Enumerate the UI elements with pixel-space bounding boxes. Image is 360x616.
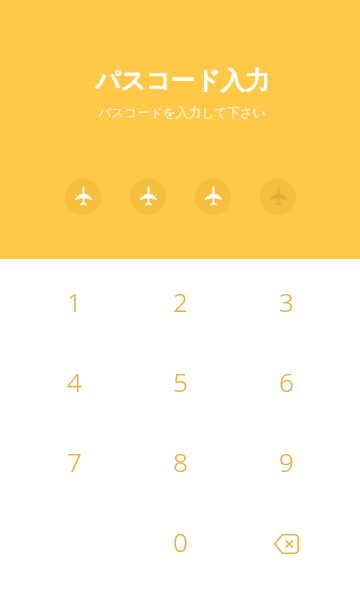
staticText: 6 — [279, 364, 294, 399]
button[interactable]: Delete last digit — [233, 501, 339, 581]
button[interactable]: 8 — [127, 421, 233, 501]
button[interactable]: 4 — [21, 341, 127, 421]
button[interactable]: 6 — [233, 341, 339, 421]
staticText: 1 — [67, 284, 82, 319]
staticText: 4 — [67, 364, 82, 399]
button[interactable]: 9 — [233, 421, 339, 501]
button[interactable]: 7 — [21, 421, 127, 501]
staticText: 7 — [67, 444, 82, 479]
button[interactable]: 5 — [127, 341, 233, 421]
staticText: 8 — [173, 444, 188, 479]
staticText: 0 — [173, 524, 188, 559]
button[interactable]: 3 — [233, 261, 339, 341]
button[interactable]: 2 — [127, 261, 233, 341]
staticText: パスコードを入力して下さい — [98, 105, 266, 121]
staticText: 3 — [279, 284, 294, 319]
staticText: 2 — [173, 284, 188, 319]
staticText: 9 — [279, 444, 294, 479]
staticText: 5 — [173, 364, 188, 399]
staticText: パスコード入力 — [95, 65, 270, 96]
button[interactable]: 1 — [21, 261, 127, 341]
button[interactable]: 0 — [127, 501, 233, 581]
